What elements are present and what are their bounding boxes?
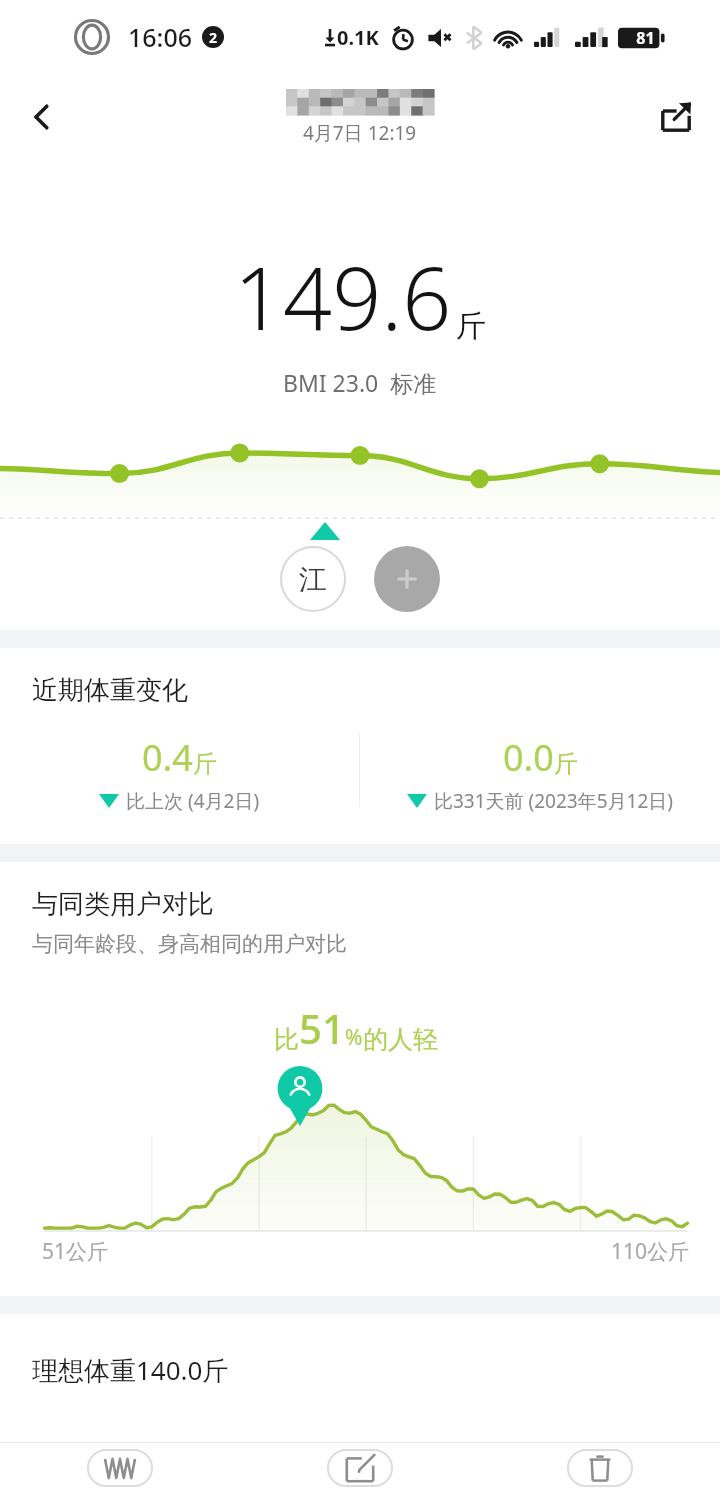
staticText: 2 bbox=[209, 28, 218, 47]
staticText: 理想体重140.0斤 bbox=[32, 1352, 229, 1388]
staticText: 斤 bbox=[554, 749, 578, 779]
staticText: 16:06 bbox=[128, 20, 193, 54]
button[interactable]: Add member bbox=[374, 546, 440, 612]
staticText: 比 bbox=[274, 1024, 299, 1055]
staticText: BMI 23.0 标准 bbox=[283, 367, 437, 398]
button[interactable]: 缩小 bbox=[0, 1443, 240, 1493]
staticText: % bbox=[345, 1023, 363, 1052]
staticText: 斤 bbox=[193, 749, 217, 779]
staticText: 0.4 bbox=[142, 733, 193, 782]
staticText: 81 bbox=[636, 27, 655, 49]
button[interactable]: Share bbox=[648, 89, 704, 145]
button[interactable]: 记体重 bbox=[240, 1443, 480, 1493]
staticText: 斤 bbox=[456, 307, 486, 345]
staticText: 的人轻 bbox=[363, 1024, 438, 1055]
button[interactable]: 江 bbox=[280, 546, 346, 612]
staticText: 与同类用户对比 bbox=[32, 888, 214, 921]
staticText: 0.1K bbox=[337, 24, 379, 51]
staticText: 51 bbox=[299, 1001, 345, 1055]
staticText: 51公斤 bbox=[42, 1237, 109, 1266]
staticText: 110公斤 bbox=[611, 1237, 690, 1266]
staticText: 江 bbox=[299, 562, 327, 597]
staticText: 与同年龄段、身高相同的用户对比 bbox=[32, 931, 347, 957]
other: Your position bbox=[272, 1065, 328, 1127]
staticText: 149.6 bbox=[234, 238, 452, 355]
button[interactable]: 删除 bbox=[480, 1443, 720, 1493]
staticText: 比331天前 (2023年5月12日) bbox=[434, 788, 674, 814]
button[interactable]: 理想体重140.0斤 bbox=[0, 1314, 720, 1442]
staticText: 0.0 bbox=[503, 733, 554, 782]
button[interactable]: 0.4 bbox=[0, 733, 359, 814]
staticText: 近期体重变化 bbox=[32, 674, 188, 707]
button[interactable]: Back bbox=[14, 89, 70, 145]
staticText: 4月7日 12:19 bbox=[303, 120, 417, 146]
staticText: 比上次 (4月2日) bbox=[126, 788, 260, 814]
button[interactable]: 0.0 bbox=[360, 733, 720, 814]
